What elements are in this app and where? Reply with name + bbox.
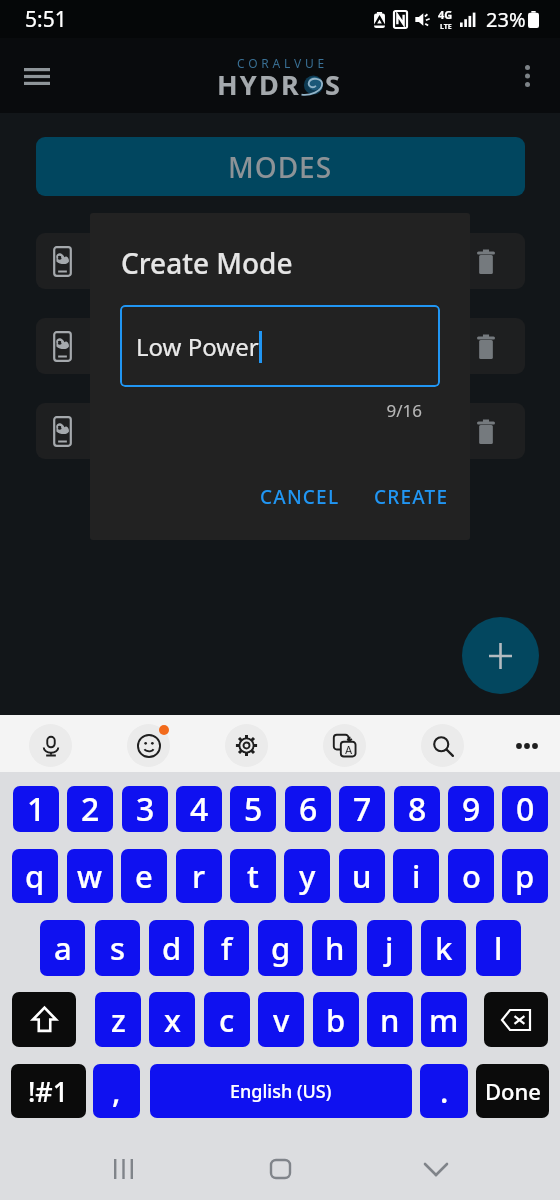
button[interactable]: Shift bbox=[12, 992, 76, 1047]
staticText: g bbox=[271, 927, 291, 969]
button[interactable]: x bbox=[149, 992, 195, 1047]
button[interactable]: Delete bbox=[36, 318, 525, 374]
staticText: . bbox=[440, 1070, 449, 1112]
staticText: !#1 bbox=[28, 1073, 69, 1110]
button[interactable]: i bbox=[393, 849, 439, 903]
staticText: h bbox=[325, 927, 345, 969]
staticText: a bbox=[54, 927, 72, 969]
button[interactable]: More options bbox=[503, 52, 551, 100]
staticText: 5 bbox=[244, 787, 263, 831]
staticText: Low Power bbox=[136, 330, 259, 363]
button[interactable]: w bbox=[67, 849, 113, 903]
staticText: m bbox=[429, 999, 459, 1041]
button[interactable]: Backspace bbox=[484, 992, 548, 1047]
button[interactable]: b bbox=[313, 992, 359, 1047]
button[interactable]: . bbox=[420, 1064, 468, 1118]
button[interactable]: 2 bbox=[67, 786, 113, 832]
button[interactable]: p bbox=[502, 849, 548, 903]
button[interactable]: Menu bbox=[13, 52, 61, 100]
button[interactable]: 8 bbox=[394, 786, 440, 832]
staticText: b bbox=[326, 999, 346, 1041]
staticText: s bbox=[110, 927, 126, 969]
button[interactable]: t bbox=[230, 849, 276, 903]
button[interactable]: CANCEL bbox=[259, 475, 341, 519]
staticText: k bbox=[435, 927, 453, 969]
button[interactable]: Search bbox=[421, 724, 464, 767]
button[interactable]: Delete bbox=[458, 233, 514, 289]
button[interactable]: 6 bbox=[285, 786, 331, 832]
staticText: p bbox=[515, 855, 535, 897]
staticText: i bbox=[412, 855, 421, 897]
button[interactable]: , bbox=[93, 1064, 140, 1118]
button[interactable]: a bbox=[40, 920, 85, 976]
button[interactable]: r bbox=[176, 849, 222, 903]
button[interactable]: y bbox=[284, 849, 330, 903]
button[interactable]: d bbox=[149, 920, 194, 976]
button[interactable]: Translate bbox=[323, 724, 366, 767]
staticText: A bbox=[345, 742, 353, 757]
button[interactable]: 0 bbox=[502, 786, 548, 832]
button[interactable]: Home bbox=[250, 1138, 310, 1200]
button[interactable]: u bbox=[339, 849, 385, 903]
staticText: u bbox=[352, 855, 372, 897]
button[interactable]: Add bbox=[462, 617, 539, 694]
button[interactable]: c bbox=[204, 992, 250, 1047]
button[interactable]: Delete bbox=[458, 403, 514, 459]
staticText: j bbox=[385, 927, 394, 969]
button[interactable]: Delete bbox=[458, 318, 514, 374]
button[interactable]: CREATE bbox=[370, 475, 452, 519]
button[interactable]: !#1 bbox=[11, 1064, 86, 1118]
staticText: r bbox=[192, 855, 206, 897]
button[interactable]: s bbox=[95, 920, 140, 976]
button[interactable]: g bbox=[258, 920, 303, 976]
button[interactable]: Emoji bbox=[127, 724, 170, 767]
staticText: 4 bbox=[190, 787, 209, 831]
staticText: 8 bbox=[408, 787, 427, 831]
staticText: , bbox=[112, 1070, 121, 1112]
staticText: HYDR bbox=[217, 66, 301, 103]
button[interactable]: z bbox=[95, 992, 141, 1047]
staticText: English (US) bbox=[230, 1079, 332, 1104]
staticText: t bbox=[247, 855, 259, 897]
button[interactable]: 5 bbox=[230, 786, 276, 832]
staticText: S bbox=[325, 66, 343, 103]
button[interactable]: 4 bbox=[176, 786, 222, 832]
staticText: n bbox=[380, 999, 400, 1041]
button[interactable]: Delete bbox=[36, 403, 525, 459]
button[interactable]: Delete bbox=[36, 233, 525, 289]
button[interactable]: j bbox=[367, 920, 412, 976]
staticText: f bbox=[221, 927, 233, 969]
button[interactable]: 9 bbox=[448, 786, 494, 832]
staticText: l bbox=[494, 927, 503, 969]
staticText: v bbox=[273, 999, 290, 1041]
button[interactable]: Settings bbox=[225, 724, 268, 767]
button[interactable]: English (US) bbox=[150, 1064, 412, 1118]
button[interactable]: q bbox=[12, 849, 58, 903]
button[interactable]: Low Power bbox=[120, 305, 440, 387]
staticText: 2 bbox=[81, 787, 100, 831]
button[interactable]: e bbox=[121, 849, 167, 903]
button[interactable]: o bbox=[448, 849, 494, 903]
staticText: 0 bbox=[516, 787, 535, 831]
button[interactable]: l bbox=[476, 920, 521, 976]
staticText: Done bbox=[485, 1076, 541, 1106]
button[interactable]: MODES bbox=[36, 137, 525, 196]
button[interactable]: Back bbox=[406, 1138, 466, 1200]
staticText: x bbox=[164, 999, 181, 1041]
button[interactable]: m bbox=[421, 992, 467, 1047]
staticText: 7 bbox=[353, 787, 372, 831]
button[interactable]: 3 bbox=[122, 786, 168, 832]
button[interactable]: n bbox=[367, 992, 413, 1047]
button[interactable]: 7 bbox=[339, 786, 385, 832]
button[interactable]: 1 bbox=[13, 786, 59, 832]
staticText: y bbox=[299, 855, 316, 897]
button[interactable]: h bbox=[312, 920, 357, 976]
button[interactable]: More bbox=[505, 724, 548, 767]
button[interactable]: Voice input bbox=[29, 724, 72, 767]
staticText: CREATE bbox=[374, 484, 449, 510]
button[interactable]: Recents bbox=[93, 1138, 153, 1200]
button[interactable]: Done bbox=[476, 1064, 549, 1118]
button[interactable]: v bbox=[258, 992, 304, 1047]
button[interactable]: f bbox=[204, 920, 249, 976]
button[interactable]: k bbox=[421, 920, 466, 976]
